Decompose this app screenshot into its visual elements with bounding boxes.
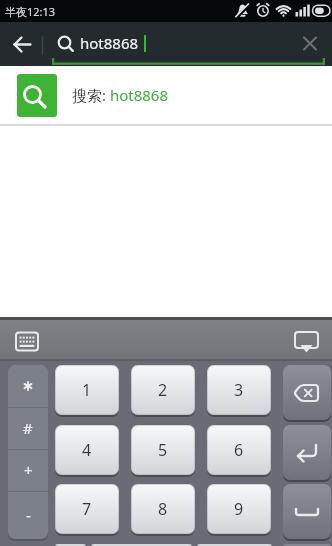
staticText: 3 — [234, 379, 244, 401]
button[interactable]: 2 — [131, 365, 195, 415]
button[interactable]: + — [8, 449, 48, 491]
button[interactable] — [0, 22, 42, 66]
staticText: 1 — [82, 379, 92, 401]
button[interactable]: 9 — [207, 484, 271, 534]
button[interactable]: 搜索: hot8868 — [0, 66, 332, 124]
staticText: 搜索: hot8868 — [72, 85, 169, 105]
staticText: 半夜12:13 — [5, 4, 56, 19]
button[interactable]: 5 — [131, 425, 195, 475]
button[interactable] — [283, 484, 331, 539]
button[interactable] — [283, 425, 331, 480]
staticText: 5 — [158, 439, 168, 461]
button[interactable]: 7 — [55, 484, 119, 534]
staticText: + — [24, 460, 33, 480]
button[interactable]: 3 — [207, 365, 271, 415]
staticText: # — [23, 418, 33, 438]
staticText: 6 — [234, 439, 244, 461]
staticText: 4 — [82, 439, 92, 461]
staticText: 7 — [82, 498, 92, 520]
button[interactable] — [288, 324, 326, 356]
button[interactable]: 4 — [55, 425, 119, 475]
staticText: 8 — [158, 498, 168, 520]
button[interactable] — [283, 365, 331, 420]
button[interactable]: # — [8, 407, 48, 449]
button[interactable] — [44, 22, 294, 66]
button[interactable]: 8 — [131, 484, 195, 534]
staticText: 2 — [158, 379, 168, 401]
button[interactable] — [8, 324, 46, 356]
button[interactable] — [296, 28, 328, 60]
button[interactable]: 1 — [55, 365, 119, 415]
staticText: - — [26, 505, 31, 525]
button[interactable]: 6 — [207, 425, 271, 475]
staticText: 9 — [234, 498, 244, 520]
button[interactable] — [8, 365, 48, 407]
button[interactable]: - — [8, 491, 48, 539]
staticText: hot8868 — [80, 33, 139, 53]
